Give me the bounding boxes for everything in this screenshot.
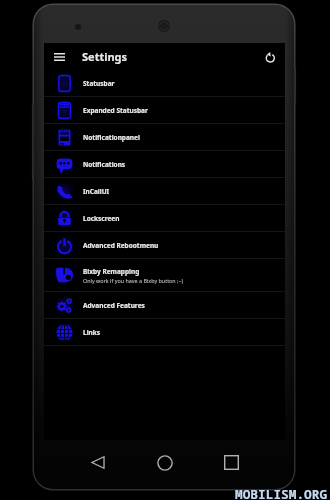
staticText: Links xyxy=(83,328,101,337)
staticText: Expanded Statusbar xyxy=(83,106,148,115)
staticText: Only work if you have a Bixby button ;~) xyxy=(83,277,184,284)
staticText: Notificationpanel xyxy=(83,133,140,142)
button[interactable]: Links xyxy=(44,319,285,346)
button[interactable]: Bixby Remapping xyxy=(44,259,285,292)
button[interactable]: Expanded Statusbar xyxy=(44,97,285,124)
button[interactable]: Back xyxy=(76,449,119,476)
button[interactable]: Home xyxy=(143,449,186,476)
button[interactable]: Advanced Features xyxy=(44,292,285,319)
staticText: Advanced Features xyxy=(83,301,145,310)
staticText: Lockscreen xyxy=(83,214,120,223)
staticText: Statusbar xyxy=(83,79,115,88)
button[interactable]: Menu xyxy=(46,43,72,70)
staticText: InCallUI xyxy=(83,187,110,196)
staticText: Settings xyxy=(82,49,128,64)
staticText: Notifications xyxy=(83,160,126,169)
staticText: Bixby Remapping xyxy=(83,267,140,276)
button[interactable]: Lockscreen xyxy=(44,205,285,232)
button[interactable]: Advanced Rebootmenu xyxy=(44,232,285,259)
button[interactable]: Statusbar xyxy=(44,70,285,97)
staticText: MOBILISM.ORG xyxy=(235,485,328,500)
button[interactable]: Notificationpanel xyxy=(44,124,285,151)
button[interactable]: Restore xyxy=(257,44,283,70)
staticText: Advanced Rebootmenu xyxy=(83,241,159,250)
button[interactable]: Notifications xyxy=(44,151,285,178)
button[interactable]: InCallUI xyxy=(44,178,285,205)
button[interactable]: Recents xyxy=(210,449,253,476)
